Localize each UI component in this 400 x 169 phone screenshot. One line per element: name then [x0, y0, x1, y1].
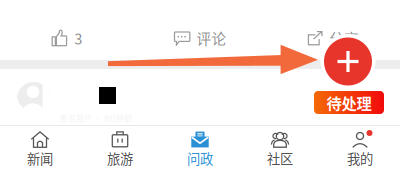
button[interactable]: 社区	[240, 126, 320, 169]
button[interactable]: 新闻	[0, 126, 80, 169]
staticText: 问政	[187, 148, 213, 168]
button[interactable]: 问政	[160, 126, 240, 169]
button[interactable]: 评论	[133, 27, 267, 49]
staticText: 我的	[347, 148, 373, 168]
button[interactable]: 我的	[320, 126, 400, 169]
staticText: 待处理	[326, 91, 371, 114]
staticText: 旅游	[107, 148, 133, 168]
staticText: 社区	[267, 148, 293, 168]
staticText: 评论	[196, 27, 226, 49]
staticText: 新闻	[27, 148, 53, 168]
button[interactable]: 旅游	[80, 126, 160, 169]
staticText: 匿名用户 · 8分钟前	[60, 112, 132, 124]
button[interactable]: 3	[0, 27, 133, 49]
button[interactable]: 待处理	[314, 91, 384, 114]
staticText: 3	[74, 27, 82, 49]
staticText: 分享	[329, 27, 359, 49]
button[interactable]: 分享	[267, 27, 400, 49]
